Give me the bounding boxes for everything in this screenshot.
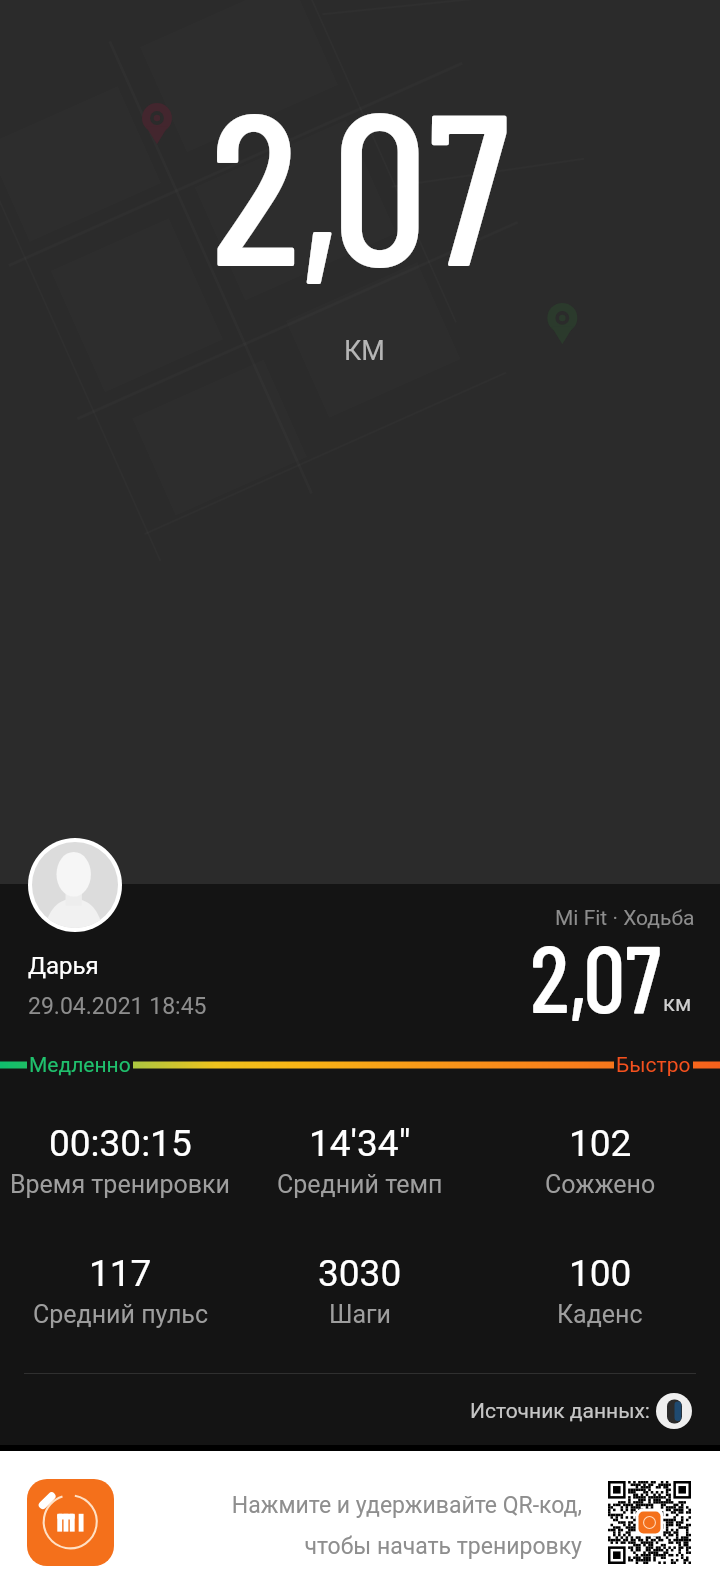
staticText: 2,07 [530, 919, 662, 1032]
button[interactable]: 102 [480, 1122, 720, 1199]
staticText: Время тренировки [10, 1170, 231, 1199]
button[interactable]: Profile photo [28, 838, 122, 932]
staticText: 117 [89, 1252, 152, 1295]
button[interactable]: 14'34" [240, 1122, 480, 1199]
staticText: 102 [569, 1122, 632, 1165]
staticText: 2,07 [210, 51, 510, 309]
staticText: чтобы начать тренировку [304, 1533, 582, 1560]
staticText: Медленно [29, 1053, 131, 1078]
staticText: Шаги [329, 1300, 392, 1329]
button[interactable]: 100 [480, 1252, 720, 1329]
staticText: 14'34" [309, 1122, 411, 1165]
staticText: Источник данных: [470, 1399, 650, 1424]
staticText: 100 [569, 1252, 632, 1295]
staticText: Mi Fit · Ходьба [555, 906, 695, 931]
button[interactable]: QR code to start workout [608, 1481, 691, 1564]
button[interactable]: 117 [0, 1252, 240, 1329]
staticText: Каденс [557, 1300, 643, 1329]
staticText: Сожжено [545, 1170, 656, 1199]
button[interactable]: 3030 [240, 1252, 480, 1329]
staticText: 29.04.2021 18:45 [28, 993, 207, 1020]
staticText: км [663, 991, 692, 1017]
staticText: Быстро [616, 1053, 691, 1078]
staticText: Дарья [28, 952, 99, 980]
staticText: 00:30:15 [49, 1122, 192, 1165]
staticText: Средний пульс [33, 1300, 208, 1329]
staticText: КМ [344, 335, 385, 367]
staticText: Средний темп [277, 1170, 443, 1199]
staticText: Нажмите и удерживайте QR-код, [231, 1492, 582, 1519]
button[interactable]: Mi Fit app [27, 1479, 114, 1566]
button[interactable]: Mi Band data source [656, 1393, 692, 1429]
staticText: 3030 [318, 1252, 402, 1295]
button[interactable]: 00:30:15 [0, 1122, 240, 1199]
